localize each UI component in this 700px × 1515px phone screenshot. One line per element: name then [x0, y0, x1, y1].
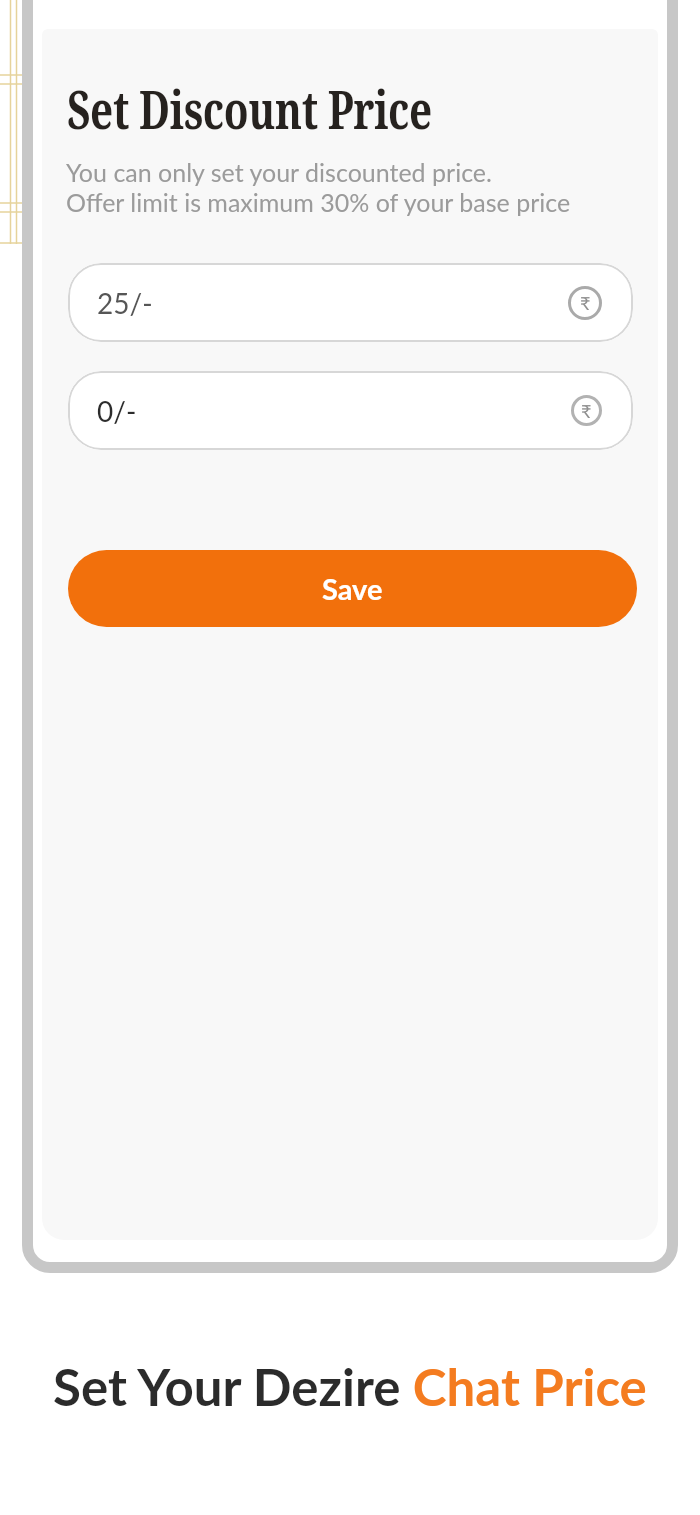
staticText: 0/- — [97, 394, 137, 428]
button[interactable]: Save — [68, 550, 637, 627]
button[interactable]: 25/- — [68, 263, 633, 342]
button[interactable]: 0/- — [68, 371, 633, 450]
staticText: Save — [322, 571, 383, 606]
staticText: ₹ — [581, 400, 592, 422]
staticText: 25/- — [97, 286, 153, 320]
staticText: Set Your Dezire Chat Price — [53, 1356, 647, 1417]
staticText: Set Discount Price — [67, 73, 432, 144]
staticText: ₹ — [580, 292, 591, 314]
staticText: You can only set your discounted price. … — [66, 157, 571, 218]
